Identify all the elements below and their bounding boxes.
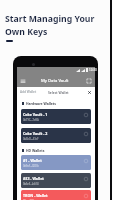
staticText: Hardware Wallets (26, 101, 56, 106)
button[interactable]: Coke Vault - 1 (21, 109, 91, 124)
staticText: Own Keys (5, 26, 48, 38)
button[interactable]: TRON - Wallet (21, 190, 91, 200)
button[interactable]: #33 - Wallet (21, 173, 91, 188)
staticText: Coke Vault - 2 (23, 131, 48, 136)
staticText: #1 - Wallet (23, 158, 42, 163)
button[interactable]: Menu (20, 78, 26, 84)
button[interactable]: Scan QR code (86, 78, 92, 84)
staticText: TRON - Wallet (23, 193, 48, 198)
staticText: My Data Vault (41, 78, 69, 84)
button[interactable]: #1 - Wallet (21, 155, 91, 170)
staticText: 0x3bD...41cF (23, 137, 39, 141)
staticText: #33 - Wallet (23, 176, 44, 181)
staticText: 0x5eE...bb14 (23, 182, 39, 186)
staticText: Select Wallet (48, 90, 69, 95)
staticText: 0x71C...7e9A (23, 118, 39, 122)
staticText: HD Wallets (26, 148, 45, 153)
button[interactable]: Coke Vault - 2 (21, 128, 91, 143)
staticText: Start Managing Your (5, 13, 95, 25)
staticText: 12:30 (89, 68, 97, 72)
button[interactable]: Add Wallet (20, 90, 37, 94)
staticText: Coke Vault - 1 (23, 112, 48, 117)
button[interactable]: Close (87, 90, 92, 95)
staticText: TKq...9Wzx (23, 199, 37, 200)
staticText: 0x9aF...02Db (23, 164, 39, 168)
